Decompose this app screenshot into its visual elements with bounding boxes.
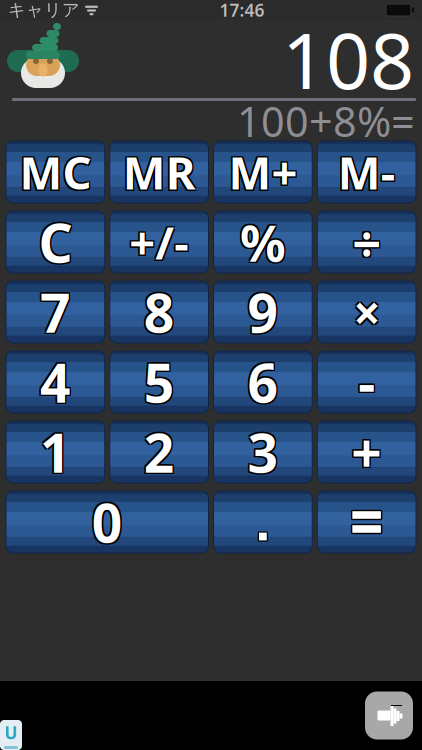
staticText: -: [358, 347, 375, 417]
button[interactable]: 8: [110, 281, 209, 343]
staticText: 5: [145, 345, 176, 416]
staticText: 5: [145, 348, 176, 419]
button[interactable]: C: [6, 211, 105, 273]
staticText: %: [238, 210, 284, 277]
staticText: 5: [144, 347, 175, 417]
staticText: M-: [336, 140, 394, 201]
staticText: +: [352, 418, 383, 489]
button[interactable]: Equals: [317, 491, 416, 553]
staticText: %: [241, 210, 287, 277]
staticText: +: [351, 417, 382, 487]
staticText: 100+8%=: [237, 94, 415, 148]
button[interactable]: 4: [6, 351, 105, 413]
staticText: C: [37, 205, 71, 276]
staticText: ÷: [353, 207, 382, 274]
staticText: +: [350, 418, 381, 489]
staticText: 0: [93, 488, 124, 559]
staticText: 6: [247, 347, 278, 417]
staticText: 8: [142, 275, 173, 346]
button[interactable]: ÷: [317, 211, 416, 273]
staticText: MR: [121, 143, 194, 203]
staticText: +: [350, 415, 381, 486]
staticText: 2: [145, 415, 176, 486]
staticText: 8: [145, 278, 176, 349]
staticText: 7: [41, 275, 72, 346]
staticText: 0: [93, 485, 124, 556]
button[interactable]: ×: [317, 281, 416, 343]
button[interactable]: 7: [6, 281, 105, 343]
staticText: MR: [121, 140, 194, 201]
staticText: 8: [142, 278, 173, 349]
button[interactable]: 6: [213, 351, 312, 413]
button[interactable]: +: [317, 421, 416, 483]
staticText: C: [37, 208, 71, 279]
staticText: M+: [230, 140, 299, 201]
staticText: 0: [90, 488, 121, 559]
staticText: M+: [228, 142, 297, 202]
staticText: M-: [338, 142, 396, 202]
button[interactable]: %: [213, 211, 312, 273]
staticText: 9: [247, 277, 278, 347]
staticText: M+: [230, 143, 299, 203]
staticText: 0: [90, 485, 121, 556]
button[interactable]: -: [317, 351, 416, 413]
staticText: 7: [40, 277, 71, 347]
staticText: 3: [249, 415, 280, 486]
staticText: 6: [249, 348, 280, 419]
staticText: 7: [38, 275, 69, 346]
staticText: 3: [249, 418, 280, 489]
staticText: 2: [142, 418, 173, 489]
staticText: 4: [38, 345, 69, 416]
staticText: +/-: [128, 213, 188, 273]
staticText: +: [352, 415, 383, 486]
button[interactable]: 1: [6, 421, 105, 483]
staticText: %: [240, 208, 286, 276]
staticText: ×: [353, 280, 380, 344]
button[interactable]: MC: [6, 141, 105, 203]
staticText: M+: [227, 143, 296, 203]
staticText: MR: [124, 140, 197, 201]
staticText: 4: [41, 345, 72, 416]
button[interactable]: 0: [6, 491, 208, 553]
staticText: +/-: [130, 213, 190, 273]
staticText: C: [40, 205, 74, 276]
button[interactable]: Next: [365, 691, 413, 739]
staticText: 9: [246, 278, 277, 349]
button[interactable]: Decimal point: [213, 491, 312, 553]
button[interactable]: M-: [317, 141, 416, 203]
staticText: ÷: [352, 208, 381, 276]
staticText: +/-: [129, 212, 189, 272]
button[interactable]: M+: [213, 141, 312, 203]
staticText: 1: [41, 415, 72, 486]
staticText: 5: [142, 345, 173, 416]
staticText: 4: [40, 347, 71, 417]
staticText: 3: [246, 415, 277, 486]
staticText: 0: [92, 487, 123, 557]
staticText: 1: [40, 417, 71, 487]
staticText: 6: [246, 345, 277, 416]
staticText: M+: [227, 140, 296, 201]
staticText: ×: [354, 279, 381, 342]
button[interactable]: 5: [110, 351, 209, 413]
staticText: 2: [145, 418, 176, 489]
button[interactable]: 9: [213, 281, 312, 343]
staticText: U: [4, 721, 17, 744]
staticText: %: [238, 207, 284, 274]
button[interactable]: MR: [110, 141, 209, 203]
staticText: ÷: [351, 207, 380, 274]
staticText: MR: [123, 142, 196, 202]
staticText: ×: [354, 281, 381, 345]
staticText: ×: [352, 279, 379, 342]
staticText: -: [357, 345, 374, 416]
staticText: M-: [339, 143, 397, 203]
staticText: 7: [38, 278, 69, 349]
staticText: 3: [246, 418, 277, 489]
staticText: 17:46: [219, 0, 264, 21]
button[interactable]: 2: [110, 421, 209, 483]
button[interactable]: +/-: [110, 211, 209, 273]
staticText: ÷: [351, 210, 380, 277]
button[interactable]: 3: [213, 421, 312, 483]
staticText: 3: [247, 417, 278, 487]
staticText: +/-: [130, 210, 190, 271]
staticText: MC: [18, 143, 90, 203]
